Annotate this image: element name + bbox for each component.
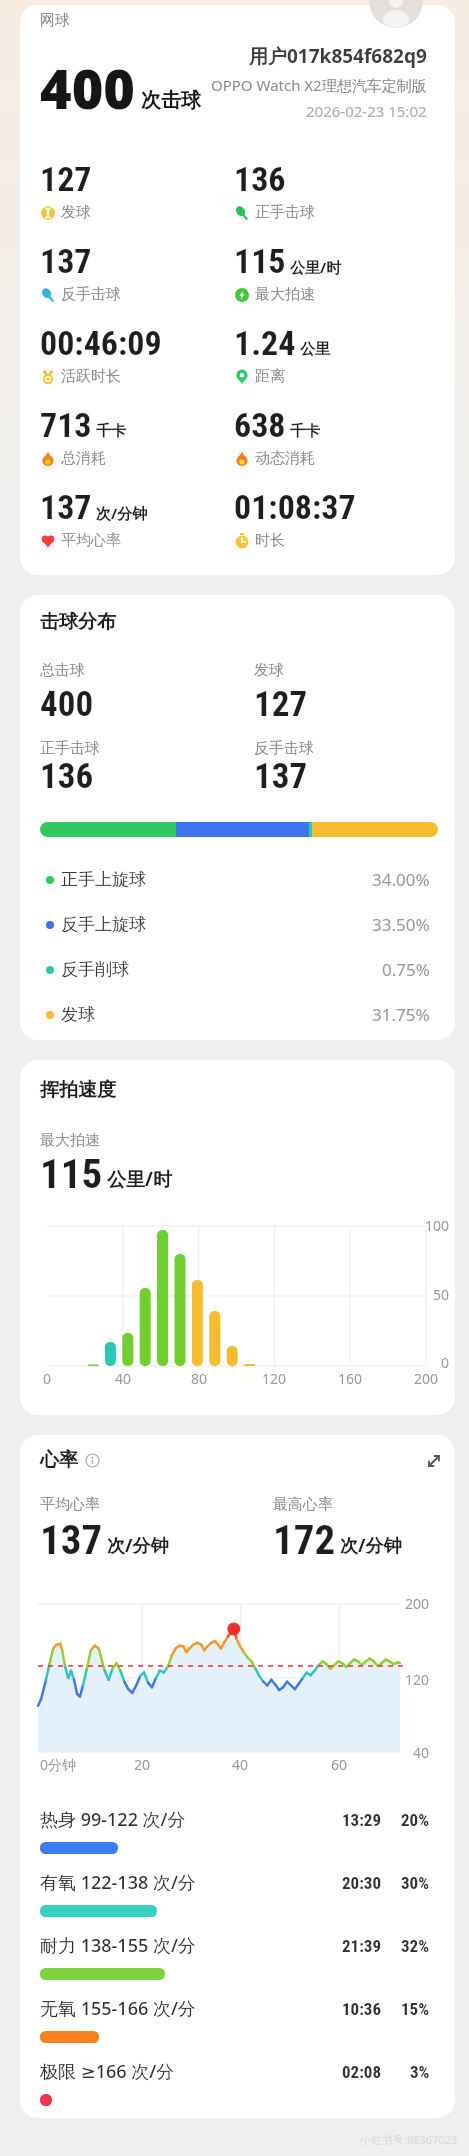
staticText: 发球 <box>61 203 91 222</box>
button[interactable]: 热身 99-122 次/分 <box>20 1807 455 1870</box>
staticText: 0.75% <box>382 958 430 981</box>
staticText: 无氧 155-166 次/分 <box>40 1996 196 2021</box>
staticText: 02:08 <box>342 2062 382 2082</box>
staticText: 3% <box>410 2062 430 2082</box>
staticText: 638 <box>234 405 286 445</box>
staticText: 用户017k854f682q9 <box>249 43 427 69</box>
staticText: 反手削球 <box>61 959 129 980</box>
staticText: 正手击球 <box>255 203 315 222</box>
staticText: 400 <box>40 51 135 125</box>
staticText: 120 <box>262 1369 287 1388</box>
staticText: 总击球 <box>40 661 85 680</box>
staticText: 千卡 <box>290 422 320 441</box>
staticText: 热身 99-122 次/分 <box>40 1807 186 1832</box>
staticText: 时长 <box>255 531 285 550</box>
staticText: 最大拍速 <box>255 285 315 304</box>
staticText: 160 <box>338 1369 363 1388</box>
staticText: 60 <box>331 1755 348 1774</box>
staticText: 平均心率 <box>61 531 121 550</box>
staticText: 0 <box>43 1369 52 1388</box>
staticText: 有氧 122-138 次/分 <box>40 1870 196 1895</box>
staticText: 0分钟 <box>40 1755 77 1774</box>
staticText: 挥拍速度 <box>40 1078 116 1102</box>
staticText: 次/分钟 <box>340 1533 402 1558</box>
staticText: 最大拍速 <box>40 1131 100 1150</box>
staticText: 10:36 <box>342 1999 382 2019</box>
staticText: 172 <box>273 1516 336 1564</box>
staticText: 115 <box>40 1150 103 1198</box>
staticText: 31.75% <box>372 1003 430 1026</box>
staticText: 极限 ≥166 次/分 <box>40 2059 175 2084</box>
staticText: 01:08:37 <box>234 487 356 527</box>
button[interactable]: 心率 <box>40 1448 100 1472</box>
staticText: 136 <box>40 756 94 797</box>
staticText: 20:30 <box>342 1873 382 1893</box>
staticText: 40 <box>232 1755 249 1774</box>
button[interactable]: 极限 ≥166 次/分 <box>20 2059 455 2118</box>
staticText: 最高心率 <box>273 1495 333 1514</box>
staticText: 80 <box>191 1369 208 1388</box>
staticText: 公里/时 <box>290 257 342 277</box>
staticText: 50 <box>433 1285 450 1304</box>
staticText: 13:29 <box>342 1810 382 1830</box>
staticText: 活跃时长 <box>61 367 121 386</box>
staticText: 次击球 <box>141 88 201 113</box>
staticText: 32% <box>401 1936 430 1956</box>
staticText: 次/分钟 <box>96 503 148 523</box>
staticText: 137 <box>40 487 92 527</box>
staticText: 动态消耗 <box>255 449 315 468</box>
button[interactable]: 反手削球 <box>46 947 430 992</box>
staticText: 发球 <box>254 661 284 680</box>
staticText: 00:46:09 <box>40 323 162 363</box>
button[interactable]: 正手上旋球 <box>46 857 430 902</box>
staticText: 平均心率 <box>40 1495 100 1514</box>
staticText: 127 <box>40 159 92 199</box>
staticText: 2026-02-23 15:02 <box>306 101 427 121</box>
staticText: 公里/时 <box>107 1166 172 1192</box>
staticText: 100 <box>425 1216 450 1235</box>
staticText: 千卡 <box>96 422 126 441</box>
staticText: 反手击球 <box>254 739 314 758</box>
staticText: 击球分布 <box>40 610 116 634</box>
staticText: 公里 <box>300 340 330 359</box>
staticText: 21:39 <box>342 1936 382 1956</box>
button[interactable]: 发球 <box>46 992 430 1037</box>
staticText: 1.24 <box>234 323 296 363</box>
staticText: 耐力 138-155 次/分 <box>40 1933 196 1958</box>
staticText: 137 <box>40 241 92 281</box>
staticText: 20% <box>401 1810 430 1830</box>
staticText: 发球 <box>61 1004 95 1025</box>
staticText: 正手上旋球 <box>61 869 146 890</box>
staticText: 20 <box>134 1755 151 1774</box>
button[interactable]: 反手上旋球 <box>46 902 430 947</box>
staticText: 反手击球 <box>61 285 121 304</box>
staticText: 127 <box>254 684 308 725</box>
button[interactable]: 有氧 122-138 次/分 <box>20 1870 455 1933</box>
staticText: 400 <box>40 684 94 725</box>
staticText: 33.50% <box>372 913 430 936</box>
staticText: 心率 <box>40 1448 78 1472</box>
staticText: 137 <box>254 756 308 797</box>
staticText: 40 <box>413 1743 430 1762</box>
staticText: 距离 <box>255 367 285 386</box>
button[interactable]: 耐力 138-155 次/分 <box>20 1933 455 1996</box>
staticText: 200 <box>405 1594 430 1613</box>
staticText: 0 <box>441 1353 450 1372</box>
staticText: 40 <box>115 1369 132 1388</box>
staticText: 反手上旋球 <box>61 914 146 935</box>
staticText: 次/分钟 <box>107 1533 169 1558</box>
button[interactable] <box>369 0 423 28</box>
staticText: 小红书号:88367023 <box>360 2132 458 2147</box>
button[interactable]: 无氧 155-166 次/分 <box>20 1996 455 2059</box>
staticText: 15% <box>401 1999 430 2019</box>
button[interactable] <box>423 1450 445 1472</box>
staticText: 30% <box>401 1873 430 1893</box>
staticText: 34.00% <box>372 868 430 891</box>
staticText: 正手击球 <box>40 739 100 758</box>
staticText: 115 <box>234 241 286 281</box>
staticText: 120 <box>405 1670 430 1689</box>
staticText: OPPO Watch X2理想汽车定制版 <box>211 75 427 95</box>
staticText: 136 <box>234 159 286 199</box>
staticText: 网球 <box>40 11 70 30</box>
staticText: 200 <box>414 1369 439 1388</box>
